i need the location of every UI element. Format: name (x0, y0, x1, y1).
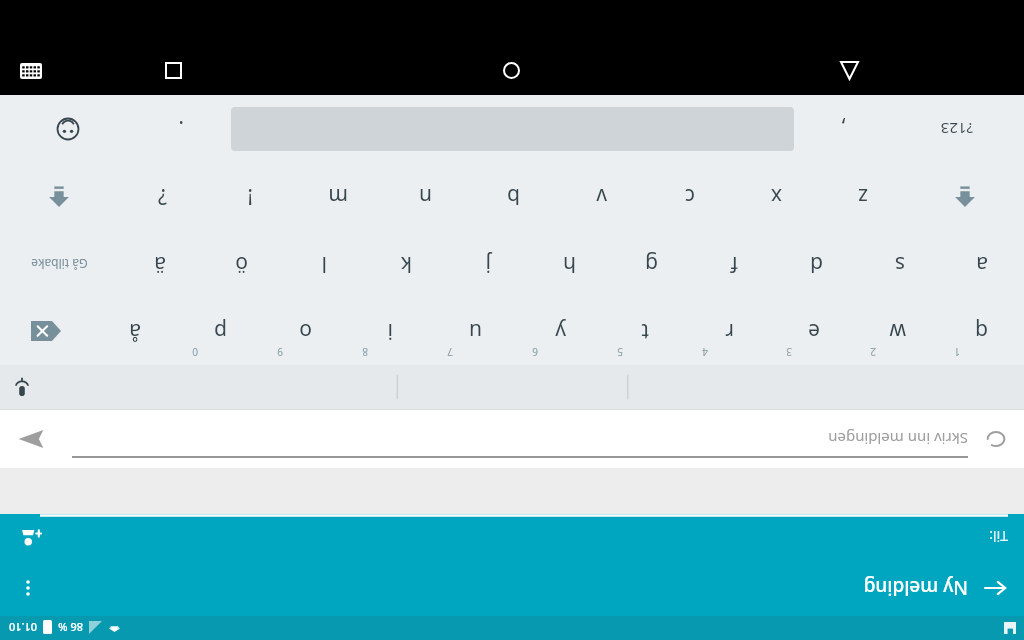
staticText: ! (247, 182, 253, 211)
button[interactable]: b (470, 163, 558, 231)
staticText: p (214, 317, 227, 346)
button[interactable]: i (348, 298, 433, 365)
button[interactable]: Attach (968, 411, 1024, 467)
button[interactable]: a (941, 231, 1024, 298)
staticText: f (730, 250, 738, 279)
button[interactable]: g (611, 231, 693, 298)
button[interactable]: . (136, 95, 227, 163)
button[interactable]: å (93, 298, 178, 365)
button[interactable]: l (283, 231, 365, 298)
button[interactable]: r (688, 298, 772, 365)
staticText: ?123 (940, 119, 973, 139)
staticText: Gå tilbake (31, 256, 88, 272)
button[interactable]: Shift (0, 163, 118, 231)
staticText: 2 (870, 345, 876, 359)
staticText: l (321, 250, 327, 279)
button[interactable]: p (178, 298, 263, 365)
button[interactable]: Home (488, 47, 536, 95)
staticText: , (840, 114, 846, 143)
staticText: ö (235, 250, 248, 279)
staticText: 0 (192, 345, 198, 359)
button[interactable]: ö (201, 231, 283, 298)
button[interactable]: s (858, 231, 941, 298)
staticText: c (684, 182, 695, 211)
staticText: 01.10 (8, 620, 37, 635)
button[interactable]: Add recipient (8, 515, 52, 559)
staticText: x (770, 182, 782, 211)
button[interactable]: Back (968, 560, 1024, 616)
staticText: Skriv inn meldingen (828, 429, 968, 449)
staticText: s (894, 250, 905, 279)
button[interactable]: h (529, 231, 611, 298)
staticText: 7 (447, 345, 453, 359)
staticText: 8 (362, 345, 368, 359)
staticText: ä (154, 250, 166, 279)
staticText: m (328, 182, 348, 211)
staticText: n (419, 182, 432, 211)
staticText: Ny melding (863, 575, 968, 601)
button[interactable]: e (772, 298, 856, 365)
button[interactable]: Emoji (0, 95, 136, 163)
button[interactable]: , (798, 95, 889, 163)
button[interactable]: w (856, 298, 940, 365)
staticText: i (387, 317, 393, 346)
button[interactable]: Back (826, 47, 874, 95)
button[interactable]: k (365, 231, 447, 298)
button[interactable]: ä (119, 231, 201, 298)
staticText: q (975, 317, 988, 346)
staticText: h (563, 250, 576, 279)
staticText: 1 (954, 345, 960, 359)
button[interactable]: m (294, 163, 382, 231)
button[interactable]: o (263, 298, 348, 365)
button[interactable]: n (382, 163, 470, 231)
staticText: 3 (786, 345, 792, 359)
staticText: e (808, 317, 820, 346)
button[interactable]: ? (118, 163, 206, 231)
button[interactable]: y (518, 298, 603, 365)
button[interactable]: f (693, 231, 775, 298)
staticText: k (400, 250, 412, 279)
staticText: y (555, 317, 566, 346)
staticText: 86 % (58, 620, 83, 635)
button[interactable]: Backspace (0, 298, 93, 365)
staticText: v (596, 182, 607, 211)
button[interactable]: x (733, 163, 820, 231)
staticText: 9 (277, 345, 283, 359)
button[interactable]: c (646, 163, 733, 231)
button[interactable]: Gå tilbake (0, 231, 119, 298)
staticText: . (178, 114, 184, 143)
staticText: o (299, 317, 312, 346)
staticText: b (507, 182, 520, 211)
staticText: 5 (617, 345, 623, 359)
staticText: u (469, 317, 482, 346)
button[interactable]: ! (206, 163, 294, 231)
staticText: r (725, 317, 734, 346)
staticText: j (485, 250, 491, 279)
button[interactable]: Shift (907, 163, 1024, 231)
staticText: 4 (702, 345, 708, 359)
staticText: Til: (989, 527, 1008, 546)
staticText: å (129, 317, 141, 346)
staticText: a (976, 250, 988, 279)
button[interactable]: j (447, 231, 529, 298)
button[interactable]: Voice input (0, 365, 44, 409)
button[interactable]: q (940, 298, 1024, 365)
staticText: w (889, 317, 906, 346)
button[interactable]: d (775, 231, 858, 298)
staticText: g (645, 250, 658, 279)
button[interactable]: More options (0, 560, 56, 616)
button[interactable]: t (603, 298, 688, 365)
staticText: 6 (532, 345, 538, 359)
button[interactable]: ?123 (889, 95, 1024, 163)
button[interactable]: Send (0, 410, 62, 468)
staticText: t (641, 317, 649, 346)
button[interactable]: u (433, 298, 518, 365)
button[interactable]: z (820, 163, 907, 231)
staticText: d (810, 250, 823, 279)
staticText: z (858, 182, 868, 211)
staticText: ? (157, 182, 167, 211)
button[interactable]: v (558, 163, 646, 231)
button[interactable]: Switch keyboard (14, 54, 48, 88)
button[interactable]: Recent apps (150, 47, 198, 95)
